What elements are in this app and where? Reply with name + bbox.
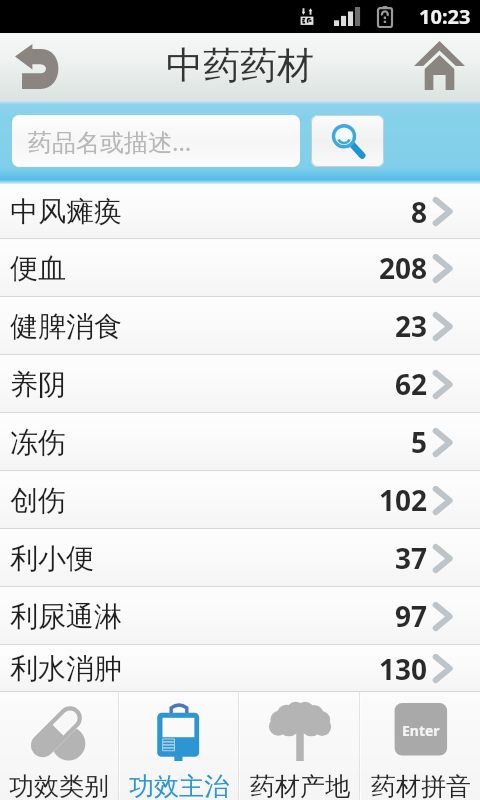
button[interactable]: 药材产地	[240, 692, 359, 800]
button[interactable]: Enter	[361, 692, 480, 800]
staticText: 冻伤	[10, 425, 66, 460]
staticText: 中风瘫痪	[10, 194, 122, 229]
button[interactable]: 便血	[0, 239, 480, 297]
staticText: 便血	[10, 251, 66, 286]
staticText: 创伤	[10, 483, 66, 518]
staticText: 8	[411, 193, 428, 231]
button[interactable]: 冻伤	[0, 413, 480, 471]
button[interactable]: 功效类别	[0, 692, 118, 800]
staticText: 102	[379, 481, 428, 519]
staticText: 利尿通淋	[10, 599, 122, 634]
staticText: 5	[411, 423, 428, 461]
staticText: 130	[379, 650, 428, 688]
staticText: 中药药材	[166, 42, 314, 89]
button[interactable]: 利小便	[0, 529, 480, 587]
staticText: 62	[395, 365, 428, 403]
staticText: 功效主治	[129, 771, 229, 800]
staticText: 利小便	[10, 541, 94, 576]
staticText: 37	[395, 539, 428, 577]
button[interactable]: Home	[406, 31, 472, 99]
staticText: 养阴	[10, 367, 66, 402]
button[interactable]: 创伤	[0, 471, 480, 529]
button[interactable]: 利尿通淋	[0, 587, 480, 645]
staticText: 功效类别	[9, 771, 109, 800]
button[interactable]: 药品名或描述...	[12, 115, 300, 167]
button[interactable]: 中风瘫痪	[0, 184, 480, 239]
button[interactable]: Search	[311, 115, 384, 167]
staticText: 药材产地	[250, 771, 350, 800]
button[interactable]: Back	[2, 32, 74, 100]
staticText: 药材拼音	[371, 771, 471, 800]
button[interactable]: 健脾消食	[0, 297, 480, 355]
staticText: 利水消肿	[10, 651, 122, 686]
staticText: 健脾消食	[10, 309, 122, 344]
button[interactable]: 功效主治	[120, 692, 238, 800]
staticText: 208	[379, 249, 428, 287]
staticText: 97	[395, 597, 428, 635]
staticText: Enter	[402, 721, 440, 740]
staticText: 23	[395, 307, 428, 345]
staticText: 药品名或描述...	[28, 125, 192, 158]
button[interactable]: 利水消肿	[0, 645, 480, 692]
button[interactable]: 养阴	[0, 355, 480, 413]
staticText: 10:23	[419, 3, 471, 30]
